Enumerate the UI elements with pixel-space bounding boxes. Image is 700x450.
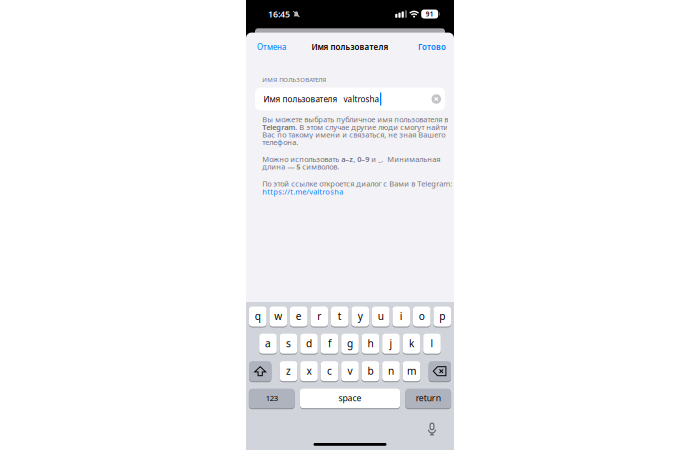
staticText: j [389, 336, 392, 350]
staticText: v [347, 364, 352, 378]
staticText: Имя пользователя [263, 93, 337, 105]
button[interactable]: t [331, 306, 348, 326]
staticText: Отмена [257, 42, 286, 52]
button[interactable]: y [351, 306, 369, 326]
staticText: l [430, 336, 433, 350]
button[interactable]: x [300, 361, 318, 381]
staticText: x [306, 364, 311, 378]
button[interactable]: 123 [249, 389, 295, 408]
staticText: d [306, 336, 312, 350]
button[interactable]: Shift [249, 361, 271, 381]
button[interactable]: w [269, 306, 287, 326]
button[interactable]: j [382, 334, 400, 354]
staticText: p [439, 309, 445, 323]
staticText: k [409, 336, 414, 350]
button[interactable]: d [300, 334, 318, 354]
button[interactable]: b [362, 361, 379, 381]
staticText: Имя пользователя [311, 42, 388, 52]
staticText: c [327, 364, 332, 378]
button[interactable]: n [382, 361, 400, 381]
button[interactable]: a [259, 334, 277, 354]
button[interactable]: p [433, 306, 451, 326]
button[interactable]: m [403, 361, 420, 381]
staticText: u [378, 309, 384, 323]
staticText: 16:45 [268, 8, 290, 20]
staticText: a [265, 336, 271, 350]
staticText: z [286, 364, 291, 378]
button[interactable]: Готово [418, 42, 446, 52]
button[interactable]: s [280, 334, 297, 354]
button[interactable]: z [280, 361, 297, 381]
button[interactable]: v [341, 361, 359, 381]
button[interactable]: f [321, 334, 338, 354]
staticText: Можно использовать a–z, 0–9 и _. Минимал… [262, 154, 440, 172]
staticText: h [367, 336, 373, 350]
button[interactable]: c [321, 361, 338, 381]
staticText: i [400, 309, 403, 323]
button[interactable]: o [413, 306, 430, 326]
button[interactable]: i [392, 306, 410, 326]
staticText: Готово [418, 42, 446, 52]
staticText: y [358, 309, 363, 323]
button[interactable]: u [372, 306, 389, 326]
button[interactable]: Отмена [257, 42, 286, 52]
staticText: https://t.me/valtrosha [262, 186, 343, 197]
staticText: n [388, 364, 394, 378]
button[interactable]: Dictation [427, 423, 437, 435]
staticText: q [255, 309, 261, 323]
button[interactable]: g [341, 334, 359, 354]
staticText: space [338, 392, 361, 404]
staticText: 91 [426, 10, 434, 18]
staticText: s [286, 336, 291, 350]
button[interactable]: l [423, 334, 441, 354]
staticText: o [419, 309, 425, 323]
button[interactable]: https://t.me/valtrosha [262, 186, 343, 197]
staticText: return [416, 392, 441, 404]
button[interactable]: r [310, 306, 328, 326]
staticText: f [328, 336, 331, 350]
staticText: ИМЯ ПОЛЬЗОВАТЕЛЯ [262, 75, 326, 84]
staticText: valtrosha [343, 93, 379, 105]
staticText: e [296, 309, 302, 323]
staticText: m [407, 364, 416, 378]
staticText: r [317, 309, 321, 323]
staticText: По этой ссылке откроется диалог с Вами в… [262, 179, 452, 189]
staticText: b [367, 364, 373, 378]
button[interactable]: h [362, 334, 379, 354]
button[interactable]: q [249, 306, 266, 326]
button[interactable]: e [290, 306, 307, 326]
staticText: Вы можете выбрать публичное имя пользова… [262, 114, 448, 147]
button[interactable]: k [403, 334, 420, 354]
button[interactable]: Delete [429, 361, 451, 381]
button[interactable]: space [300, 389, 400, 408]
button[interactable]: Clear text [432, 94, 441, 104]
button[interactable]: Имя пользователя [255, 87, 445, 110]
staticText: 123 [266, 393, 278, 403]
staticText: w [274, 309, 282, 323]
staticText: t [338, 309, 342, 323]
button[interactable]: return [405, 389, 451, 408]
staticText: g [347, 336, 353, 350]
